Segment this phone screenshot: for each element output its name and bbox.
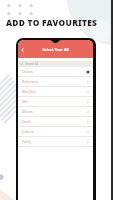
button[interactable]: Album <box>18 107 93 116</box>
button[interactable]: Culture <box>18 127 93 136</box>
staticText: Reference <box>22 79 86 84</box>
staticText: Chains <box>22 69 86 74</box>
button[interactable]: Search All <box>20 61 93 67</box>
staticText: Cards <box>22 119 86 124</box>
staticText: Gift <box>22 99 86 104</box>
staticText: Album <box>22 109 86 114</box>
staticText: Policy <box>22 139 86 144</box>
staticText: Select Your All <box>27 47 84 52</box>
button[interactable]: Blue Sea <box>18 87 93 96</box>
staticText: ADD TO FAVOURITES <box>6 17 98 28</box>
button[interactable]: Gift <box>18 97 93 106</box>
staticText: Culture <box>22 129 86 134</box>
button[interactable]: Reference <box>18 77 93 86</box>
staticText: Search All <box>25 62 39 66</box>
button[interactable]: Chains <box>18 67 93 76</box>
button[interactable]: Cards <box>18 117 93 126</box>
button[interactable]: Back <box>18 45 27 54</box>
staticText: Blue Sea <box>22 89 86 94</box>
button[interactable]: Policy <box>18 137 93 146</box>
